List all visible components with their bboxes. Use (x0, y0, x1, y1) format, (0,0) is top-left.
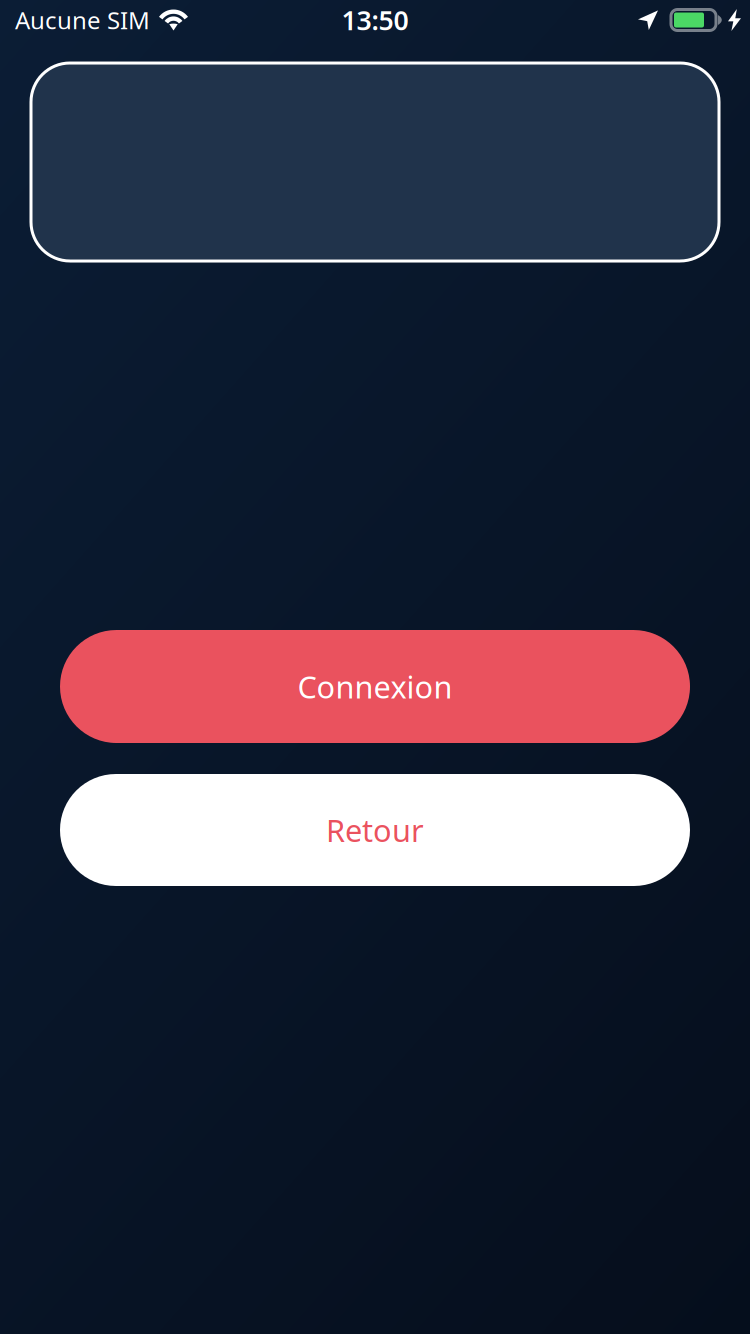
button[interactable]: Connexion (60, 630, 690, 743)
staticText: Retour (326, 810, 424, 850)
staticText: Connexion (297, 666, 452, 707)
staticText: Aucune SIM (15, 4, 150, 36)
button[interactable]: Retour (60, 774, 690, 886)
staticText: 13:50 (341, 2, 408, 38)
button[interactable]: Message (31, 63, 719, 261)
